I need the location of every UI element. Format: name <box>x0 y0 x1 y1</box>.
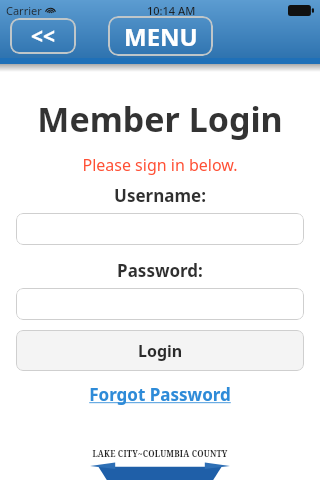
button[interactable]: Back <box>10 18 76 54</box>
staticText: MENU <box>124 20 198 53</box>
staticText: Password: <box>0 259 320 282</box>
staticText: Member Login <box>0 96 320 142</box>
button[interactable]: Forgot Password <box>0 383 320 406</box>
staticText: Carrier <box>6 3 42 18</box>
button[interactable] <box>16 288 304 320</box>
staticText: 10:14 AM <box>147 3 196 18</box>
staticText: << <box>31 22 56 51</box>
staticText: Forgot Password <box>89 383 231 406</box>
staticText: Please sign in below. <box>0 154 320 176</box>
button[interactable] <box>16 213 304 245</box>
staticText: Login <box>138 340 183 362</box>
staticText: Username: <box>0 184 320 207</box>
button[interactable]: MENU <box>108 16 213 56</box>
button[interactable]: Login <box>16 330 304 371</box>
staticText: LAKE CITY~COLUMBIA COUNTY <box>92 448 228 459</box>
